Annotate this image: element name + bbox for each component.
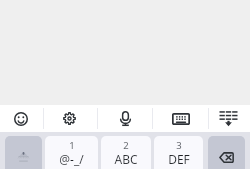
button[interactable]: Voice input <box>98 105 152 132</box>
staticText: DEF <box>168 151 190 167</box>
button[interactable]: Backspace <box>208 136 245 169</box>
button[interactable]: Settings <box>44 105 97 132</box>
button[interactable]: Switch keyboard layout <box>153 105 208 132</box>
staticText: 3 <box>176 139 182 152</box>
button[interactable]: 1 at dash underscore slash <box>45 136 98 169</box>
staticText: ABC <box>114 151 138 167</box>
button[interactable]: More tools <box>209 105 248 132</box>
staticText: 1 <box>69 139 75 152</box>
button[interactable]: Emoji <box>0 105 43 132</box>
button[interactable]: 3 DEF <box>154 136 203 169</box>
staticText: 2 <box>123 139 129 152</box>
staticText: @-_/ <box>59 151 84 167</box>
button[interactable]: Switch input method <box>5 136 42 169</box>
button[interactable]: 2 ABC <box>101 136 151 169</box>
